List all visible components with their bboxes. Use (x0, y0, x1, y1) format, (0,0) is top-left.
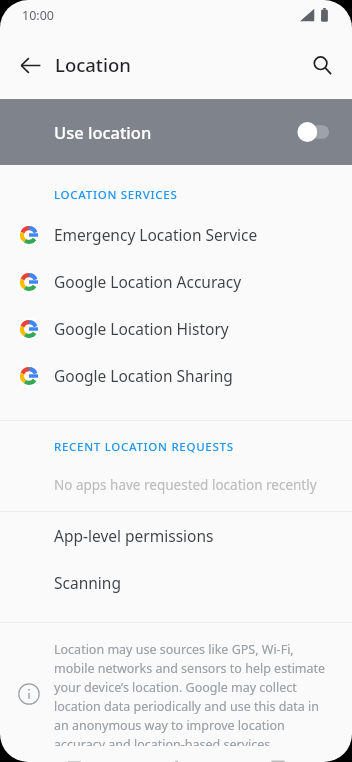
staticText: Scanning (54, 572, 121, 593)
staticText: Location may use sources like GPS, Wi-Fi… (54, 641, 328, 746)
button[interactable]: Back (6, 41, 54, 89)
staticText: LOCATION SERVICES (54, 187, 178, 203)
button[interactable]: App-level permissions (0, 512, 352, 559)
staticText: No apps have requested location recently (54, 476, 317, 494)
staticText: Emergency Location Service (54, 224, 258, 245)
button[interactable]: Search (298, 41, 346, 89)
button[interactable]: Scanning (0, 559, 352, 606)
staticText: Use location (54, 121, 296, 143)
button[interactable]: Use location (0, 99, 352, 165)
staticText: RECENT LOCATION REQUESTS (54, 439, 234, 455)
staticText: Google Location Sharing (54, 365, 233, 386)
button[interactable]: Google Location Accuracy (0, 258, 352, 305)
staticText: 10:00 (22, 7, 54, 24)
button[interactable]: Emergency Location Service (0, 211, 352, 258)
button[interactable]: Google Location Sharing (0, 352, 352, 399)
staticText: Google Location Accuracy (54, 271, 242, 292)
staticText: App-level permissions (54, 525, 214, 546)
button[interactable]: Google Location History (0, 305, 352, 352)
staticText: Google Location History (54, 318, 229, 339)
staticText: Location (55, 52, 131, 77)
